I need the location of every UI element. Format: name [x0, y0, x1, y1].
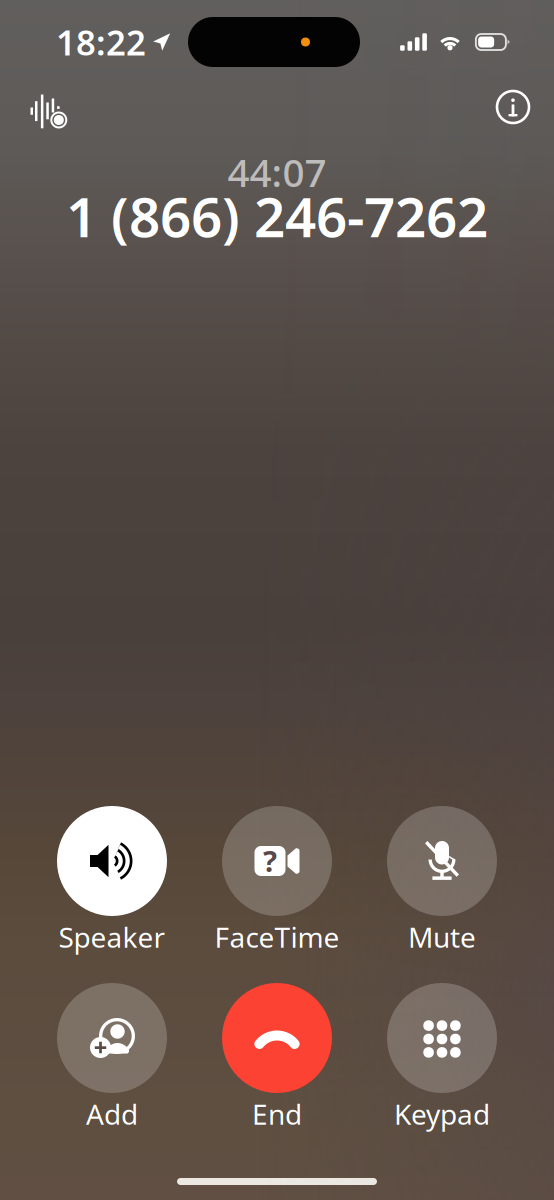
staticText: Add: [86, 1095, 138, 1133]
button[interactable]: ?: [222, 806, 332, 958]
button[interactable]: Mute: [387, 806, 497, 958]
button[interactable]: Call details: [488, 80, 538, 134]
staticText: 18:22: [56, 19, 146, 65]
staticText: 44:07: [227, 146, 326, 198]
staticText: Speaker: [58, 918, 165, 956]
staticText: End: [252, 1095, 302, 1133]
button[interactable]: Speaker: [57, 806, 167, 958]
staticText: 1 (866) 246-7262: [66, 180, 488, 252]
button[interactable]: Call recording: [21, 80, 71, 134]
staticText: Keypad: [394, 1095, 490, 1133]
staticText: ?: [263, 841, 277, 880]
staticText: FaceTime: [214, 918, 339, 956]
staticText: Mute: [408, 918, 476, 956]
button[interactable]: Add: [57, 983, 167, 1135]
button[interactable]: Keypad: [387, 983, 497, 1135]
button[interactable]: End: [222, 983, 332, 1135]
